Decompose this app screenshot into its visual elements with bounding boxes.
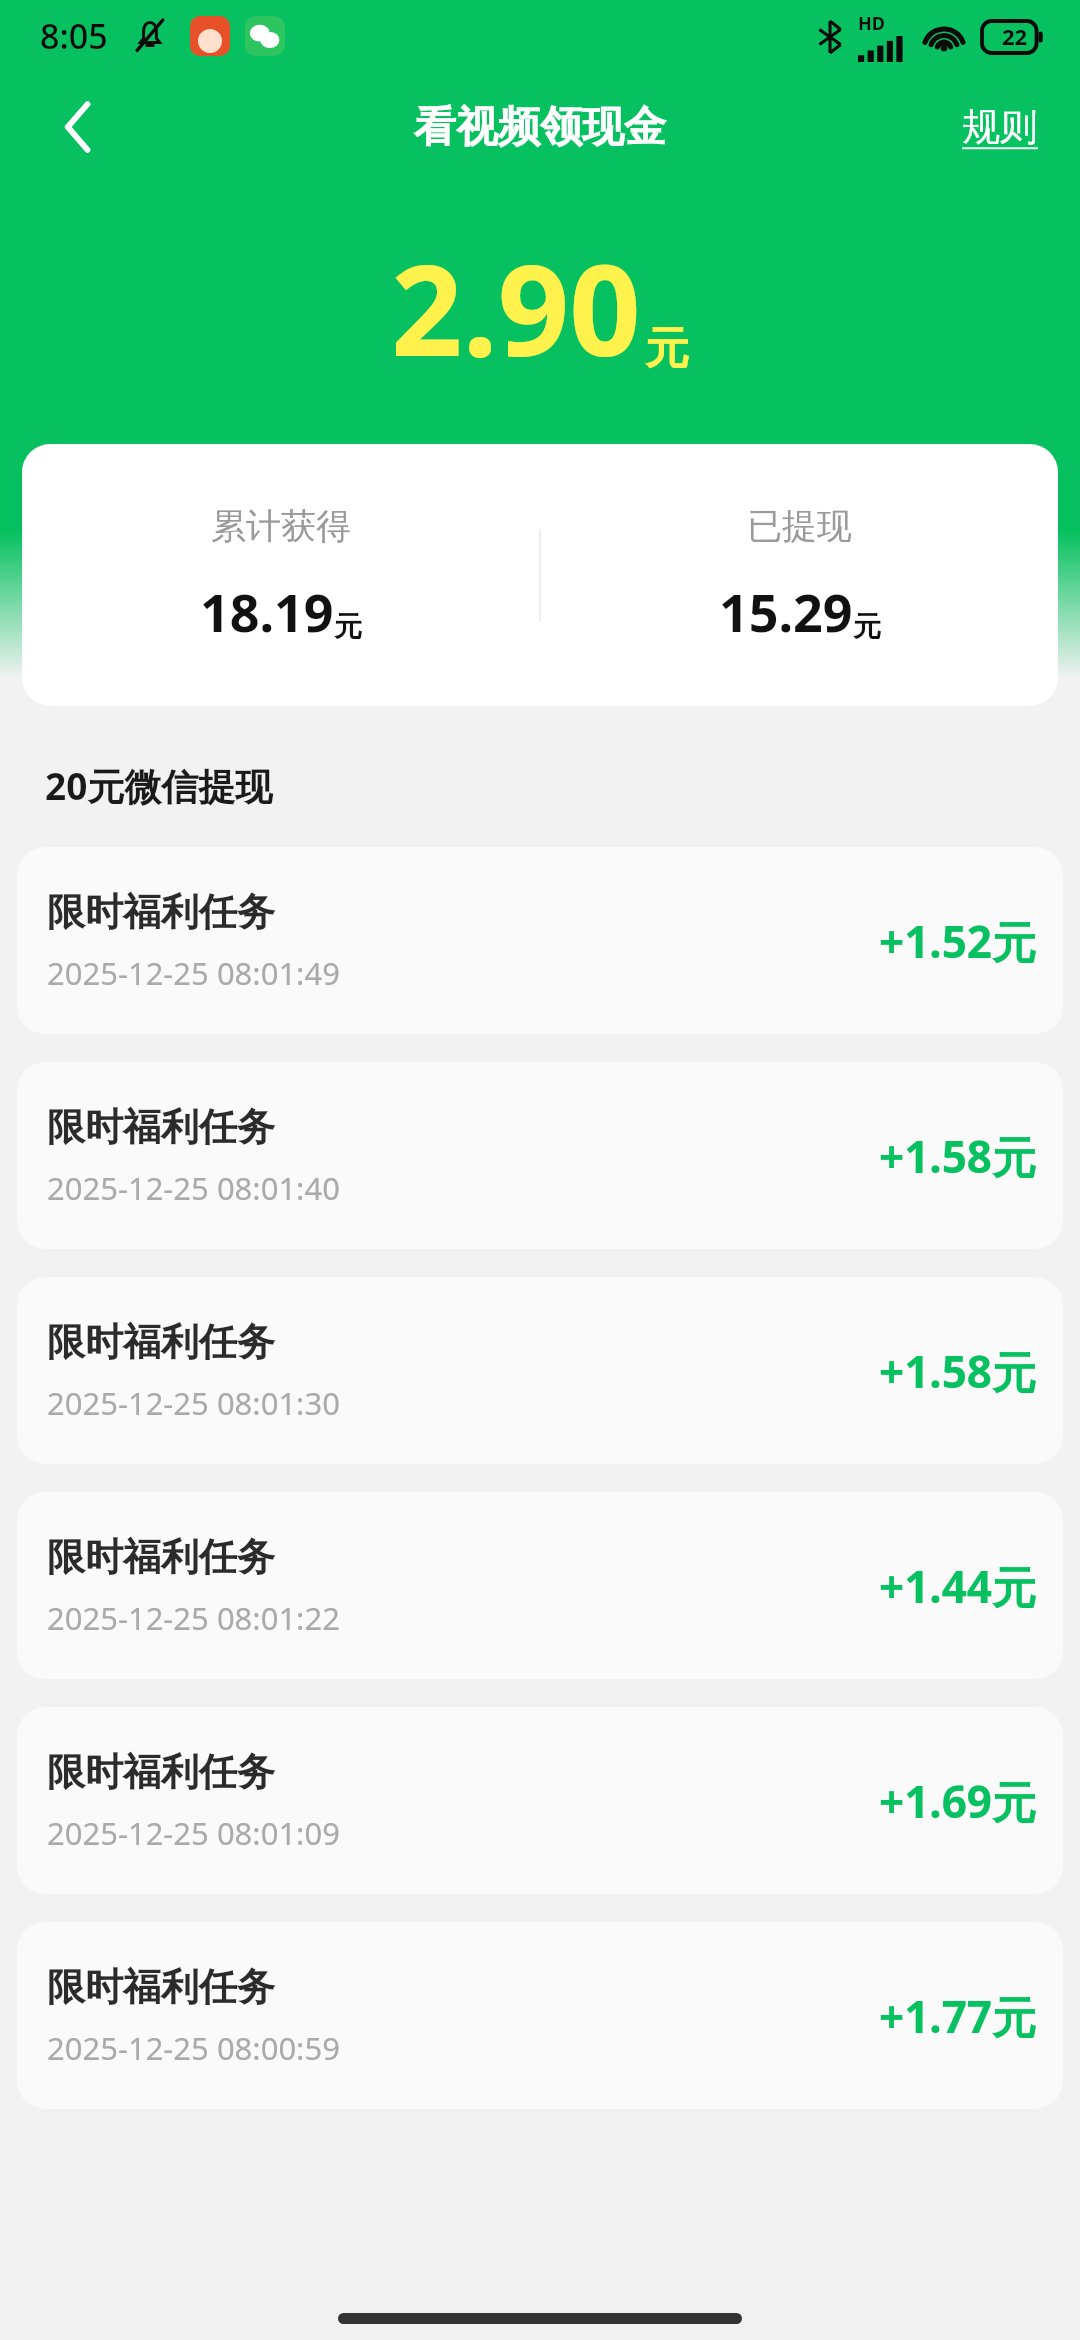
staticText: 限时福利任务 — [47, 1318, 275, 1366]
button[interactable]: 规则 — [956, 97, 1044, 157]
staticText: 元 — [334, 609, 362, 644]
staticText: 2025-12-25 08:01:49 — [47, 952, 340, 994]
staticText: +1.69元 — [879, 1771, 1037, 1831]
staticText: 2025-12-25 08:01:22 — [47, 1597, 340, 1639]
button[interactable]: 限时福利任务 — [17, 1492, 1063, 1679]
staticText: 限时福利任务 — [47, 1533, 275, 1581]
button[interactable]: 限时福利任务 — [17, 1062, 1063, 1249]
staticText: HD — [858, 11, 885, 36]
staticText: 元 — [645, 321, 689, 376]
staticText: 15.29 — [719, 576, 853, 647]
staticText: 2025-12-25 08:01:09 — [47, 1812, 340, 1854]
staticText: 8:05 — [40, 13, 108, 59]
button[interactable]: 限时福利任务 — [17, 1922, 1063, 2109]
staticText: 限时福利任务 — [47, 1103, 275, 1151]
staticText: 18.19 — [200, 576, 334, 647]
staticText: 限时福利任务 — [47, 1748, 275, 1796]
staticText: 2025-12-25 08:00:59 — [47, 2027, 340, 2069]
staticText: 看视频领现金 — [414, 101, 666, 154]
staticText: +1.52元 — [879, 911, 1037, 971]
staticText: +1.77元 — [879, 1986, 1037, 2046]
staticText: 2.90 — [391, 222, 641, 392]
button[interactable]: Back — [30, 79, 126, 175]
staticText: 2025-12-25 08:01:30 — [47, 1382, 340, 1424]
staticText: 22 — [1002, 21, 1028, 51]
staticText: 元 — [853, 609, 881, 644]
button[interactable]: 限时福利任务 — [17, 1707, 1063, 1894]
staticText: +1.58元 — [879, 1341, 1037, 1401]
staticText: 规则 — [962, 103, 1038, 151]
staticText: 限时福利任务 — [47, 888, 275, 936]
staticText: 累计获得 — [211, 504, 351, 548]
staticText: 20元微信提现 — [45, 760, 273, 811]
staticText: +1.58元 — [879, 1126, 1037, 1186]
staticText: +1.44元 — [879, 1556, 1037, 1616]
button[interactable]: 限时福利任务 — [17, 847, 1063, 1034]
staticText: 2025-12-25 08:01:40 — [47, 1167, 340, 1209]
button[interactable]: 限时福利任务 — [17, 1277, 1063, 1464]
staticText: 已提现 — [747, 504, 852, 548]
staticText: 限时福利任务 — [47, 1963, 275, 2011]
